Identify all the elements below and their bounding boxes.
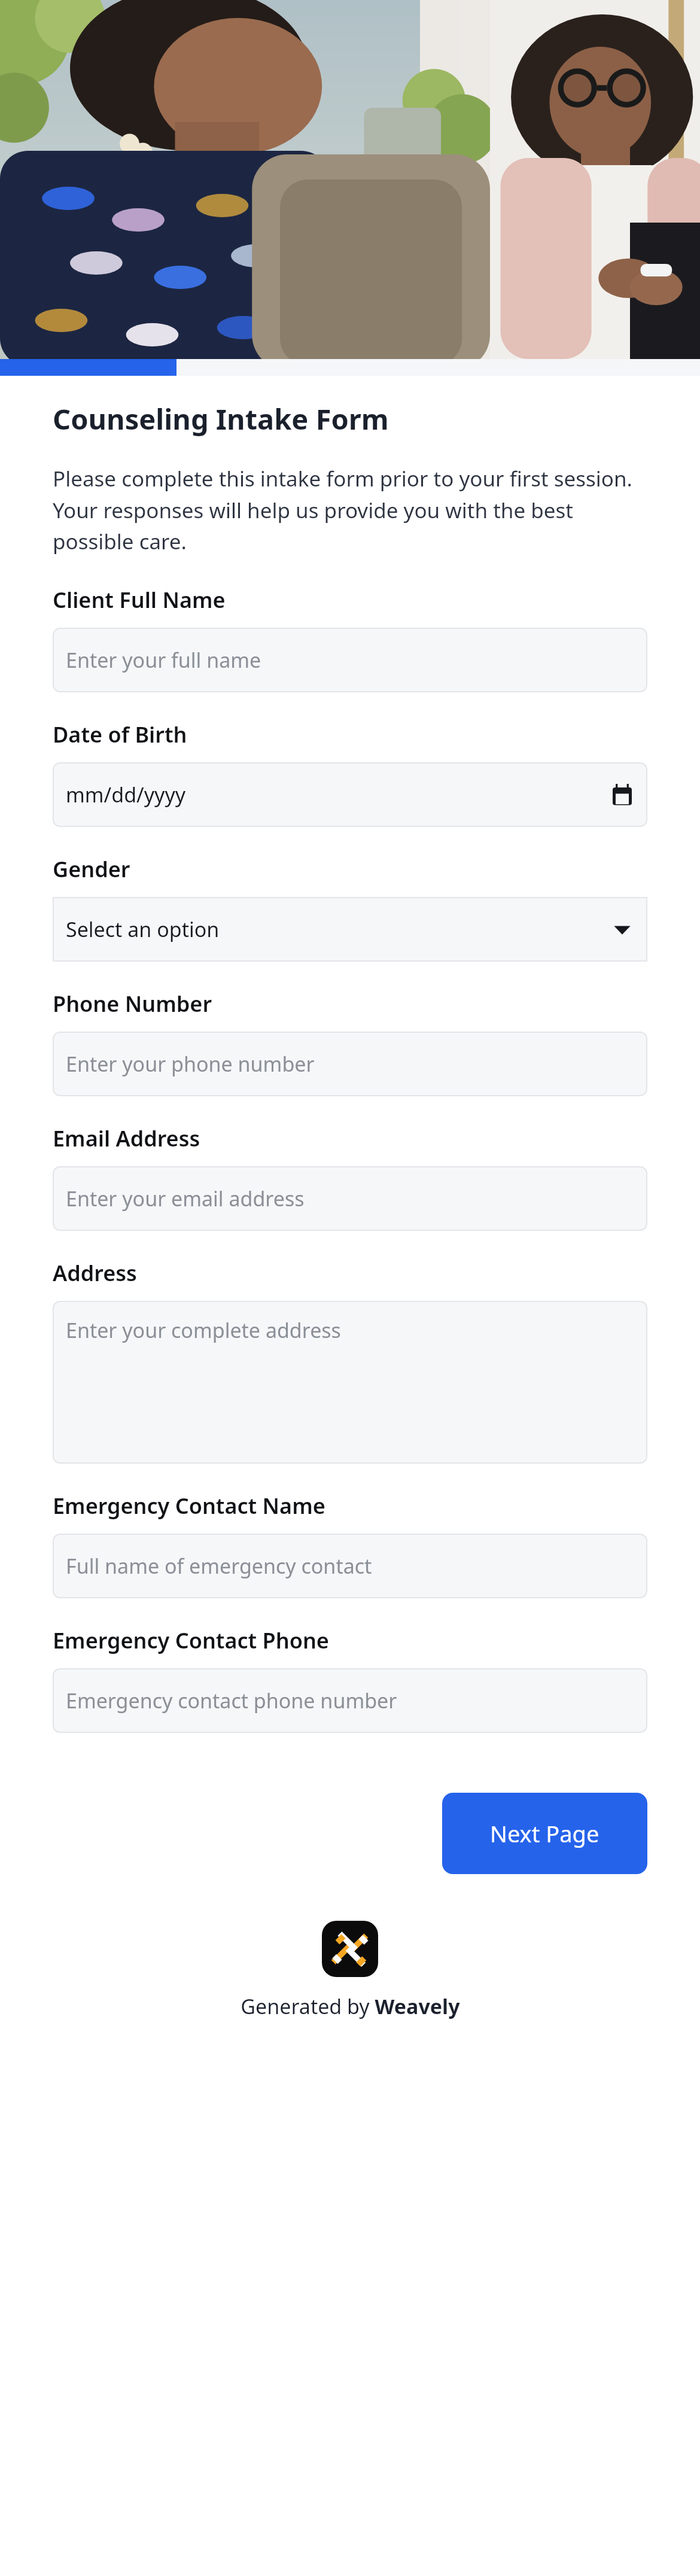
staticText: Emergency contact phone number [66,1687,397,1714]
staticText: Phone Number [53,989,212,1018]
button[interactable]: Enter your complete address [53,1301,647,1464]
staticText: Full name of emergency contact [66,1552,372,1580]
staticText: Date of Birth [53,720,187,749]
button[interactable]: Expand options [610,917,634,941]
staticText: Emergency Contact Phone [53,1626,329,1655]
staticText: Counseling Intake Form [53,400,389,438]
staticText: Enter your phone number [66,1050,315,1078]
staticText: Enter your email address [66,1185,305,1212]
staticText: Client Full Name [53,585,226,615]
other: Weavely logo [322,1921,378,1977]
button[interactable]: Open date picker [610,783,634,807]
button[interactable]: Enter your full name [53,628,647,692]
button[interactable]: Enter your email address [53,1166,647,1231]
staticText: Email Address [53,1124,200,1153]
staticText: Enter your full name [66,646,261,674]
staticText: Emergency Contact Name [53,1491,325,1520]
button[interactable]: Full name of emergency contact [53,1534,647,1598]
staticText: Enter your complete address [66,1316,341,1344]
button[interactable]: Emergency contact phone number [53,1668,647,1733]
staticText: Gender [53,854,130,884]
staticText: Next Page [490,1818,599,1849]
staticText: Address [53,1258,137,1288]
staticText: mm/dd/yyyy [66,781,186,808]
button[interactable]: mm/dd/yyyy [53,762,647,827]
staticText: Select an option [66,916,220,943]
button[interactable]: Next Page [442,1793,647,1874]
staticText: Please complete this intake form prior t… [53,464,647,555]
staticText: Generated by Weavely [241,1993,460,2020]
button[interactable]: Select an option [53,897,647,962]
button[interactable]: Enter your phone number [53,1032,647,1096]
